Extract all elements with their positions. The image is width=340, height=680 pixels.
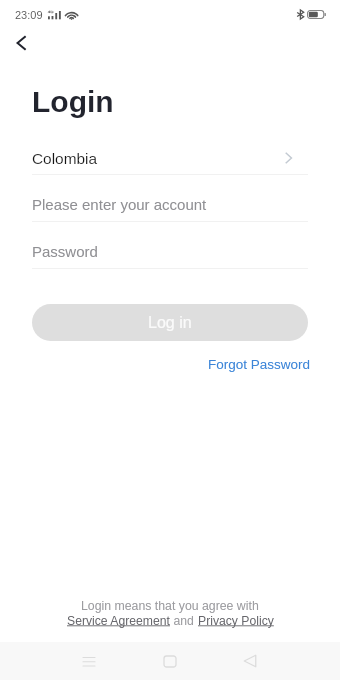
- button[interactable]: Log in: [32, 304, 308, 341]
- staticText: and: [170, 614, 198, 628]
- staticText: Colombia: [32, 150, 98, 167]
- button[interactable]: Password: [0, 243, 340, 268]
- staticText: Login: [32, 85, 114, 119]
- button[interactable]: Home: [150, 642, 190, 680]
- button[interactable]: Forgot Password: [208, 357, 311, 372]
- button[interactable]: Back: [5, 29, 37, 57]
- button[interactable]: Colombia: [0, 150, 340, 177]
- button[interactable]: Service Agreement: [67, 614, 170, 628]
- staticText: Password: [32, 243, 98, 260]
- staticText: 23:09: [15, 9, 43, 21]
- staticText: Please enter your account: [32, 196, 207, 213]
- staticText: Login means that you agree with: [81, 599, 259, 613]
- button[interactable]: Back: [230, 642, 270, 680]
- button[interactable]: Please enter your account: [0, 196, 340, 221]
- button[interactable]: Recent apps: [69, 642, 109, 680]
- staticText: Log in: [148, 314, 192, 332]
- button[interactable]: Privacy Policy: [198, 614, 274, 628]
